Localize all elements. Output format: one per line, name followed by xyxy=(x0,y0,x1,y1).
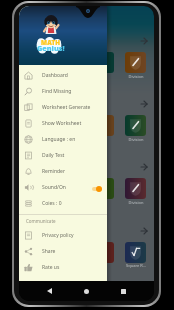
staticText: Reminder xyxy=(42,168,65,175)
staticText: MATH xyxy=(41,38,61,46)
staticText: Find Missing xyxy=(42,88,72,95)
staticText: Division xyxy=(120,137,152,142)
button[interactable]: Coies : 0 xyxy=(19,195,107,211)
button[interactable]: Dashboard xyxy=(19,67,107,83)
button[interactable]: Show Worksheet xyxy=(19,115,107,131)
button[interactable]: Open xyxy=(138,35,150,47)
button[interactable]: Home xyxy=(77,282,95,300)
staticText: Division xyxy=(120,200,152,205)
staticText: Genius! xyxy=(37,43,65,53)
button[interactable]: Rate us xyxy=(19,259,107,275)
button[interactable]: Daily Test xyxy=(19,147,107,163)
button[interactable]: Open xyxy=(138,225,150,237)
button[interactable] xyxy=(125,242,146,263)
staticText: Square R... xyxy=(120,263,152,268)
staticText: Privacy policy xyxy=(42,232,74,239)
staticText: Language : en xyxy=(42,136,76,143)
button[interactable]: Share xyxy=(19,243,107,259)
button[interactable] xyxy=(125,115,146,136)
staticText: Daily Test xyxy=(42,152,65,159)
staticText: Show Worksheet xyxy=(42,120,82,127)
button[interactable]: Reminder xyxy=(19,163,107,179)
staticText: Rate us xyxy=(42,264,60,271)
button[interactable]: Worksheet Generate xyxy=(19,99,107,115)
button[interactable] xyxy=(125,178,146,199)
staticText: Sound/On xyxy=(42,184,66,191)
button[interactable]: Find Missing xyxy=(19,83,107,99)
staticText: Worksheet Generate xyxy=(42,104,91,111)
button[interactable]: Language : en xyxy=(19,131,107,147)
button[interactable]: Sound/On xyxy=(19,179,107,195)
button[interactable]: Privacy policy xyxy=(19,227,107,243)
staticText: Division xyxy=(120,74,152,79)
button[interactable]: Back xyxy=(40,282,58,300)
staticText: Coies : 0 xyxy=(42,200,62,207)
button[interactable]: Open xyxy=(138,98,150,110)
staticText: Dashboard xyxy=(42,72,68,79)
staticText: Share xyxy=(42,248,56,255)
button[interactable]: Open xyxy=(138,161,150,173)
staticText: Communicate xyxy=(26,218,56,224)
button[interactable] xyxy=(125,52,146,73)
button[interactable]: Recent apps xyxy=(114,282,132,300)
